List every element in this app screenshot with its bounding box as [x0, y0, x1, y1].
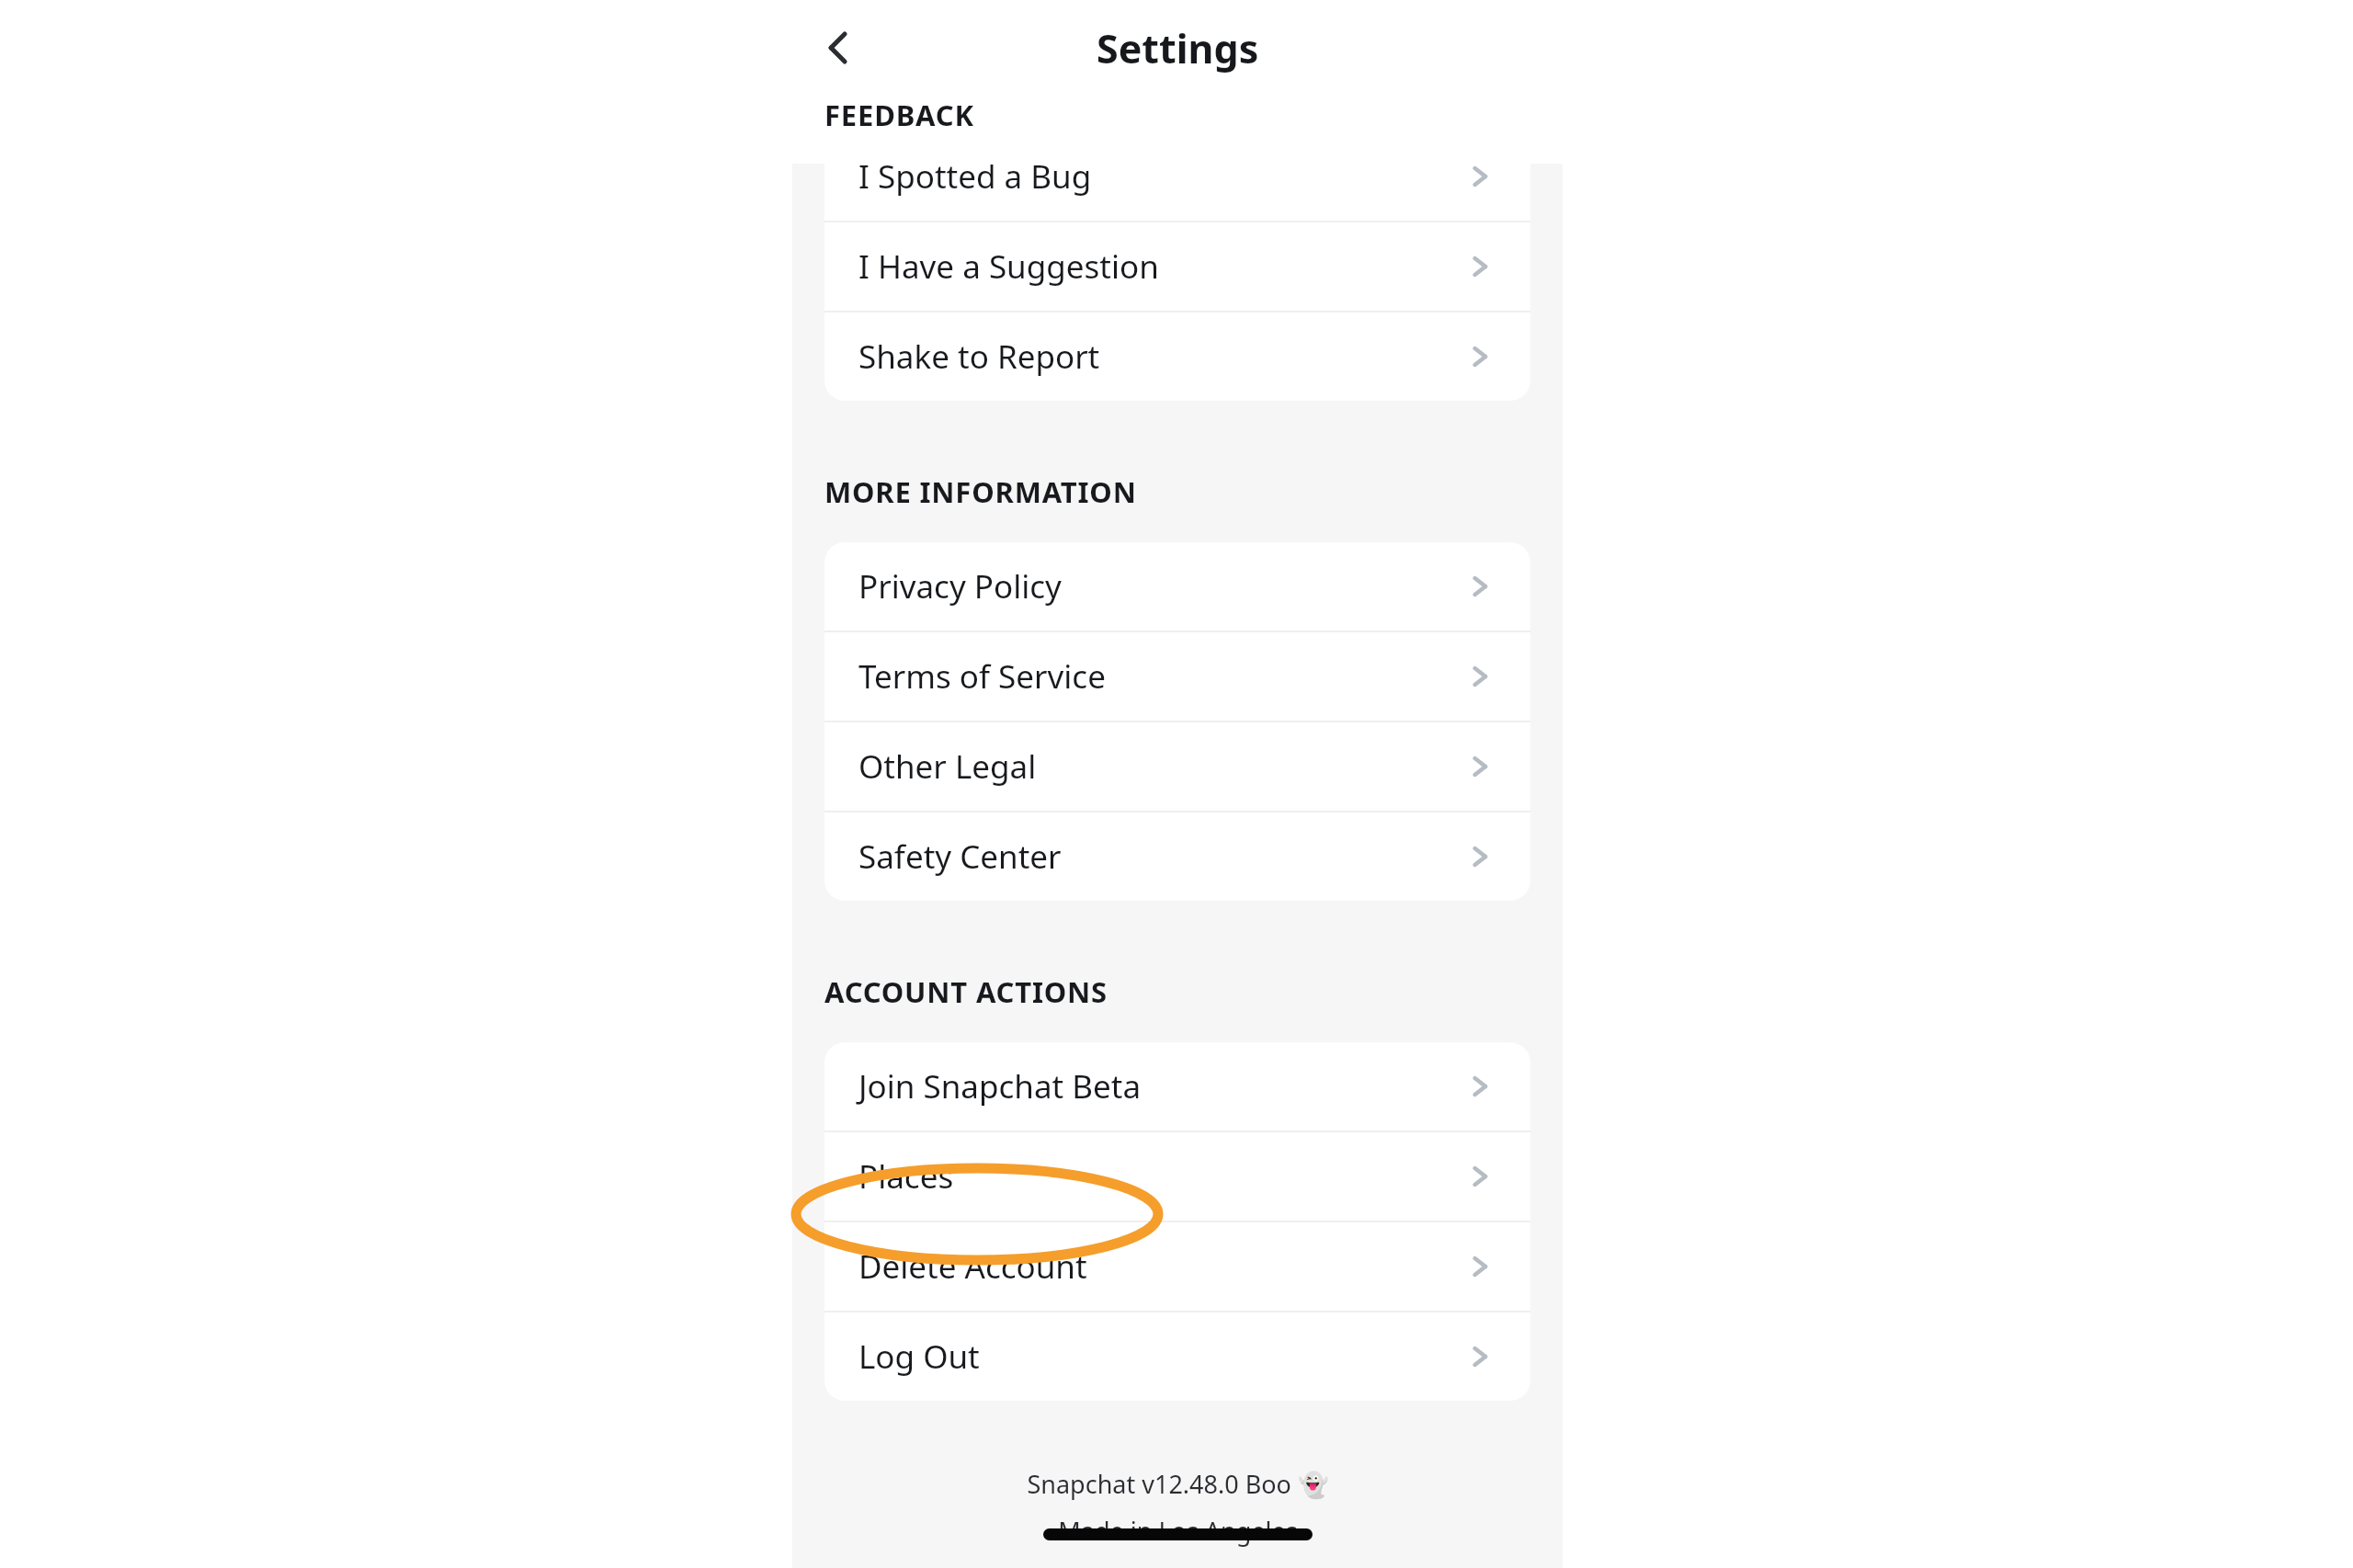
staticText: Terms of Service [858, 654, 1106, 699]
staticText: FEEDBACK [824, 96, 974, 134]
staticText: Places [858, 1154, 954, 1199]
button[interactable]: Delete Account [824, 1222, 1530, 1311]
staticText: ACCOUNT ACTIONS [824, 972, 1108, 1011]
button[interactable]: Safety Center [824, 812, 1530, 901]
staticText: Settings [1097, 21, 1259, 75]
button[interactable]: Back [803, 13, 873, 83]
button[interactable]: I Have a Suggestion [824, 222, 1530, 311]
staticText: Snapchat v12.48.0 Boo 👻 [1027, 1467, 1329, 1501]
staticText: MORE INFORMATION [824, 472, 1137, 511]
staticText: I Have a Suggestion [858, 244, 1159, 289]
staticText: Privacy Policy [858, 564, 1062, 608]
button[interactable]: Log Out [824, 1312, 1530, 1401]
staticText: Join Snapchat Beta [858, 1064, 1142, 1108]
button[interactable]: Terms of Service [824, 632, 1530, 721]
button[interactable]: Places [824, 1132, 1530, 1221]
button[interactable]: Other Legal [824, 722, 1530, 811]
button[interactable]: I Spotted a Bug [824, 132, 1530, 221]
button[interactable]: Privacy Policy [824, 542, 1530, 631]
staticText: Log Out [858, 1335, 980, 1379]
staticText: Made in Los Angeles [1058, 1514, 1298, 1548]
staticText: Safety Center [858, 835, 1062, 879]
button[interactable]: Shake to Report [824, 312, 1530, 401]
staticText: Shake to Report [858, 335, 1100, 379]
staticText: Other Legal [858, 744, 1037, 789]
staticText: Delete Account [858, 1244, 1087, 1289]
staticText: I Spotted a Bug [858, 154, 1092, 199]
button[interactable]: Join Snapchat Beta [824, 1042, 1530, 1131]
